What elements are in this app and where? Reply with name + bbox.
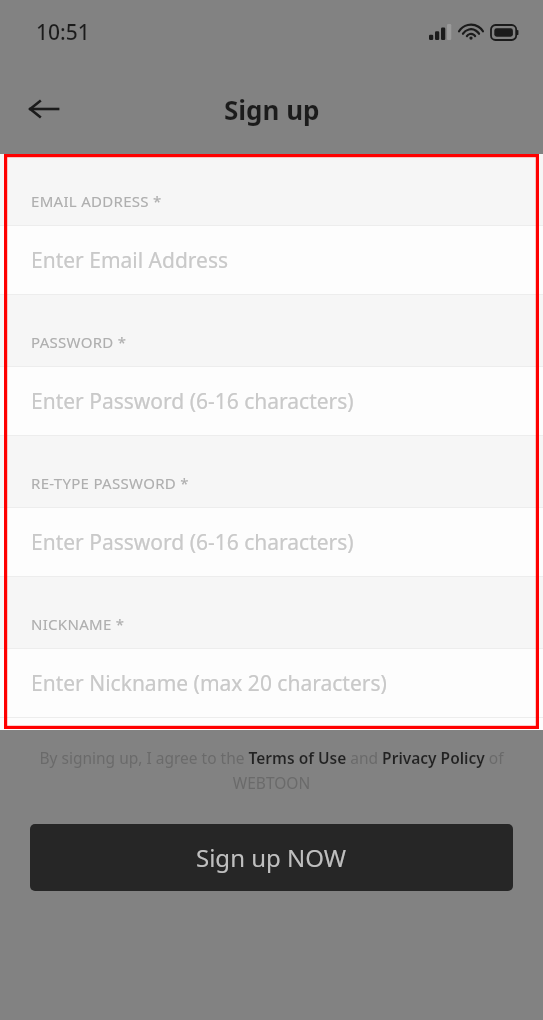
staticText: Sign up (224, 92, 320, 127)
button[interactable]: Back (20, 85, 68, 133)
staticText: Sign up NOW (196, 841, 347, 874)
staticText: Enter Password (6-16 characters) (31, 528, 354, 557)
staticText: EMAIL ADDRESS * (31, 191, 162, 211)
button[interactable]: Enter Password (6-16 characters) (0, 367, 543, 435)
button[interactable]: Enter Email Address (0, 226, 543, 294)
staticText: NICKNAME * (31, 614, 125, 634)
button[interactable]: Enter Password (6-16 characters) (0, 508, 543, 576)
staticText: 10:51 (36, 18, 90, 47)
staticText: Enter Email Address (31, 246, 229, 275)
button[interactable]: Enter Nickname (max 20 characters) (0, 649, 543, 717)
staticText: Enter Nickname (max 20 characters) (31, 669, 387, 698)
button[interactable]: By signing up, I agree to the Terms of U… (22, 747, 521, 793)
staticText: RE-TYPE PASSWORD * (31, 473, 189, 493)
staticText: Enter Password (6-16 characters) (31, 387, 354, 416)
staticText: PASSWORD * (31, 332, 127, 352)
button[interactable]: Sign up NOW (30, 824, 513, 891)
